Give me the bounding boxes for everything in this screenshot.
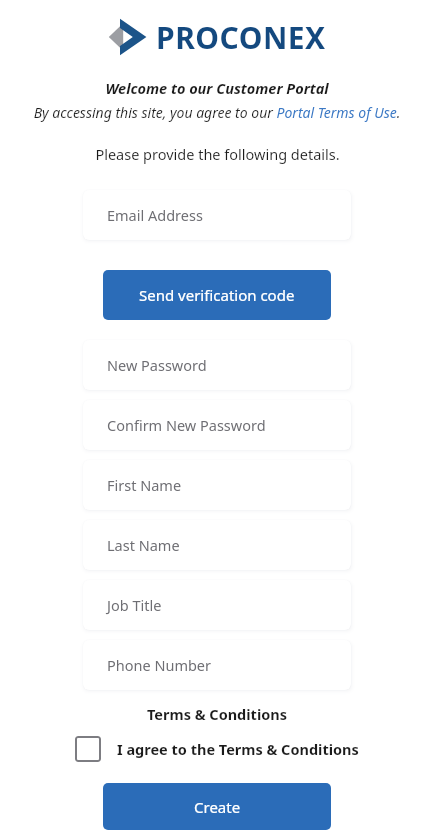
staticText: Please provide the following details. <box>95 144 340 164</box>
button[interactable]: Phone Number <box>83 640 351 690</box>
staticText: I agree to the Terms & Conditions <box>117 739 359 759</box>
staticText: New Password <box>107 355 207 375</box>
staticText: Last Name <box>107 535 180 555</box>
staticText: PROCONEX <box>156 17 326 58</box>
button[interactable]: New Password <box>83 340 351 390</box>
button[interactable]: Send verification code <box>103 270 331 320</box>
staticText: Job Title <box>107 595 162 615</box>
staticText: Welcome to our Customer Portal <box>105 78 329 98</box>
button[interactable]: Create <box>103 783 331 830</box>
button[interactable]: Confirm New Password <box>83 400 351 450</box>
staticText: Create <box>194 797 241 817</box>
staticText: Send verification code <box>139 285 295 305</box>
staticText: Confirm New Password <box>107 415 266 435</box>
other: I agree to the Terms & Conditions checkb… <box>75 736 101 762</box>
button[interactable]: Last Name <box>83 520 351 570</box>
staticText: Email Address <box>107 205 203 225</box>
button[interactable]: Job Title <box>83 580 351 630</box>
staticText: First Name <box>107 475 182 495</box>
button[interactable]: I agree to the Terms & Conditions checkb… <box>71 734 363 764</box>
staticText: By accessing this site, you agree to our… <box>12 103 422 122</box>
staticText: Phone Number <box>107 655 212 675</box>
button[interactable]: First Name <box>83 460 351 510</box>
staticText: Terms & Conditions <box>147 704 288 724</box>
button[interactable]: Email Address <box>83 190 351 240</box>
